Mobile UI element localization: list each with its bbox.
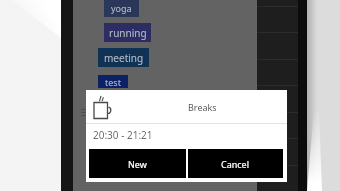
button[interactable]: New	[89, 149, 186, 178]
staticText: 20:30 - 21:21	[93, 128, 153, 142]
staticText: meeting	[104, 51, 144, 65]
button[interactable]: Breaks	[90, 92, 116, 118]
button[interactable]: running	[104, 23, 151, 42]
staticText: Cancel	[221, 158, 250, 170]
button[interactable]: yoga	[104, 0, 139, 17]
staticText: test	[105, 76, 121, 88]
button[interactable]: meeting	[98, 48, 149, 67]
staticText: Breaks	[188, 101, 217, 113]
button[interactable]: test	[98, 75, 128, 88]
button[interactable]: Cancel	[188, 149, 283, 178]
staticText: yoga	[111, 2, 132, 14]
staticText: New	[128, 158, 147, 170]
staticText: running	[109, 26, 147, 40]
